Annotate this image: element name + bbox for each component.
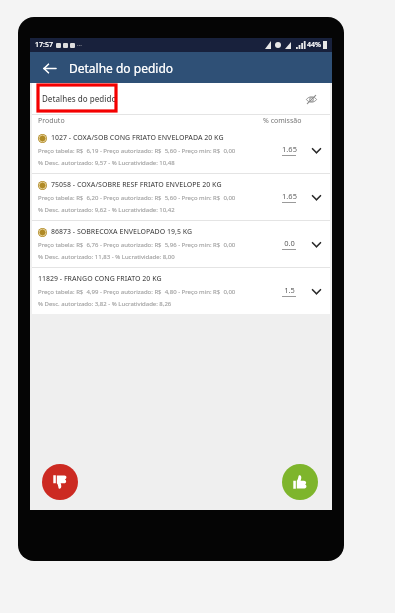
staticText: ··· [77,41,82,49]
staticText: % Desc. autorizado: 9,57 - % Lucrativida… [38,159,175,167]
button[interactable]: Expandir item [306,187,326,207]
staticText: 0.0 [284,238,295,248]
staticText: Preço tabela: R$ 6,19 - Preço autorizado… [38,147,236,155]
staticText: 11829 - FRANGO CONG FRIATO 20 KG [38,274,162,284]
button[interactable]: 1027 - COXA/SOB CONG FRIATO ENVELOPADA 2… [32,127,330,173]
button[interactable]: Detalhes do pedido [32,83,330,114]
staticText: Detalhe do pedido [69,60,174,76]
staticText: % comissão [263,116,302,126]
staticText: 75058 - COXA/SOBRE RESF FRIATO ENVELOPE … [51,180,222,190]
button[interactable]: Expandir item [306,281,326,301]
staticText: % Desc. autorizado: 3,82 - % Lucrativida… [38,300,172,308]
staticText: 44% [307,40,321,50]
staticText: Preço tabela: R$ 6,20 - Preço autorizado… [38,194,236,202]
staticText: % Desc. autorizado: 9,62 - % Lucrativida… [38,206,175,214]
staticText: 1.65 [282,191,297,201]
staticText: % Desc. autorizado: 11,83 - % Lucrativid… [38,253,175,261]
staticText: Preço tabela: R$ 6,76 - Preço autorizado… [38,241,236,249]
button[interactable]: 86873 - SOBRECOXA ENVELOPADO 19,5 KG [32,221,330,267]
staticText: Detalhes do pedido [42,93,117,104]
staticText: 17:57 [35,40,53,50]
staticText: Produto [38,116,65,126]
staticText: 86873 - SOBRECOXA ENVELOPADO 19,5 KG [51,227,193,237]
staticText: Preço tabela: R$ 4,99 - Preço autorizado… [38,288,236,296]
button[interactable]: 11829 - FRANGO CONG FRIATO 20 KG [32,268,330,314]
button[interactable]: 75058 - COXA/SOBRE RESF FRIATO ENVELOPE … [32,174,330,220]
staticText: 1.65 [282,144,297,154]
button[interactable]: Expandir item [306,140,326,160]
button[interactable]: Voltar [36,55,62,81]
button[interactable]: Expandir item [306,234,326,254]
button[interactable]: Aprovar pedido [282,464,318,500]
staticText: 1027 - COXA/SOB CONG FRIATO ENVELOPADA 2… [51,133,224,143]
button[interactable]: Ocultar detalhes [302,90,320,108]
button[interactable]: Reprovar pedido [42,464,78,500]
staticText: 1.5 [284,285,295,295]
